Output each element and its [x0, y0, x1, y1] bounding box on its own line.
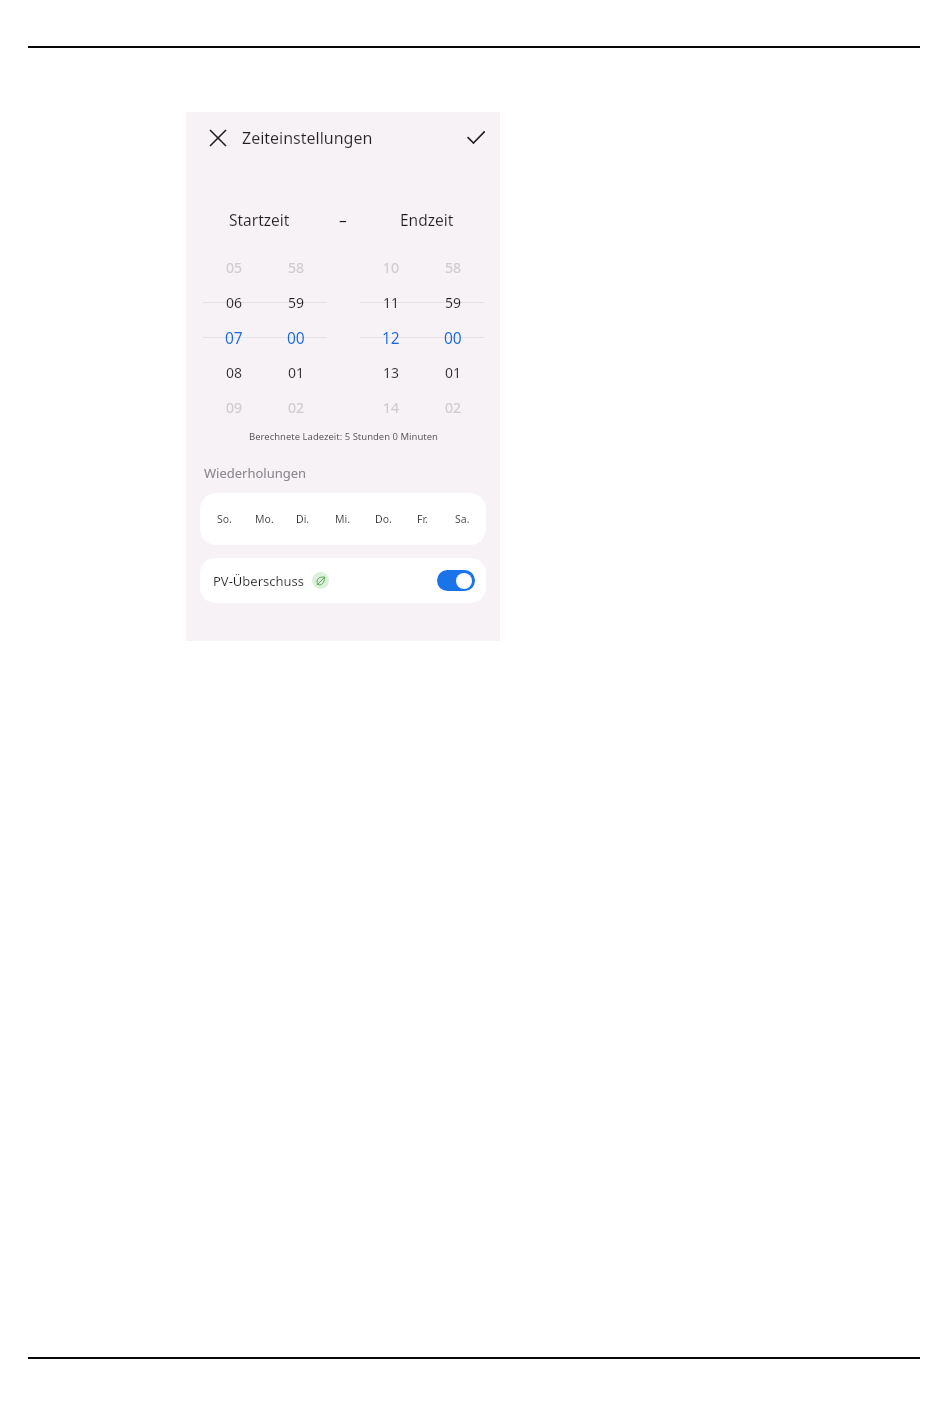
staticText: –	[339, 209, 347, 230]
button[interactable]: Mo.	[248, 499, 280, 539]
staticText: 09	[226, 398, 243, 417]
staticText: 59	[445, 293, 462, 312]
staticText: Endzeit	[400, 209, 454, 230]
button[interactable]: Fr.	[406, 499, 438, 539]
staticText: 07	[225, 327, 243, 348]
staticText: 10	[383, 258, 400, 277]
staticText: Zeiteinstellungen	[242, 127, 373, 149]
staticText: 13	[383, 363, 400, 382]
staticText: Do.	[375, 512, 392, 526]
staticText: Sa.	[455, 512, 470, 526]
staticText: 00	[287, 327, 305, 348]
staticText: Startzeit	[229, 209, 290, 230]
staticText: Di.	[296, 512, 310, 526]
staticText: 08	[226, 363, 243, 382]
staticText: 58	[445, 258, 462, 277]
staticText: 05	[226, 258, 243, 277]
button[interactable]: Sa.	[446, 499, 478, 539]
staticText: 14	[383, 398, 400, 417]
button[interactable]: 05	[203, 250, 265, 425]
staticText: 00	[444, 327, 462, 348]
staticText: 01	[288, 363, 305, 382]
staticText: Mi.	[335, 512, 351, 526]
button[interactable]: 58	[265, 250, 327, 425]
staticText: Berechnete Ladezeit: 5 Stunden 0 Minuten	[249, 430, 438, 443]
staticText: 58	[288, 258, 305, 277]
staticText: 59	[288, 293, 305, 312]
staticText: Wiederholungen	[204, 464, 307, 482]
staticText: 06	[226, 293, 243, 312]
staticText: Fr.	[417, 512, 428, 526]
button[interactable]: PV-Überschuss	[200, 558, 486, 603]
button[interactable]: 58	[422, 250, 484, 425]
staticText: So.	[217, 512, 232, 526]
button[interactable]: So.	[208, 499, 240, 539]
staticText: 01	[445, 363, 462, 382]
button[interactable]: Di.	[287, 499, 319, 539]
staticText: Mo.	[255, 512, 274, 526]
staticText: 11	[383, 293, 400, 312]
button[interactable]: Bestätigen	[458, 120, 494, 156]
button[interactable]: Schließen	[200, 120, 236, 156]
staticText: PV-Überschuss	[213, 572, 305, 590]
staticText: 02	[445, 398, 462, 417]
button[interactable]: 10	[360, 250, 422, 425]
button[interactable]: Mi.	[327, 499, 359, 539]
staticText: 12	[382, 327, 400, 348]
button[interactable]: PV-Überschuss umschalten	[437, 570, 475, 591]
staticText: 02	[288, 398, 305, 417]
button[interactable]: Do.	[367, 499, 399, 539]
